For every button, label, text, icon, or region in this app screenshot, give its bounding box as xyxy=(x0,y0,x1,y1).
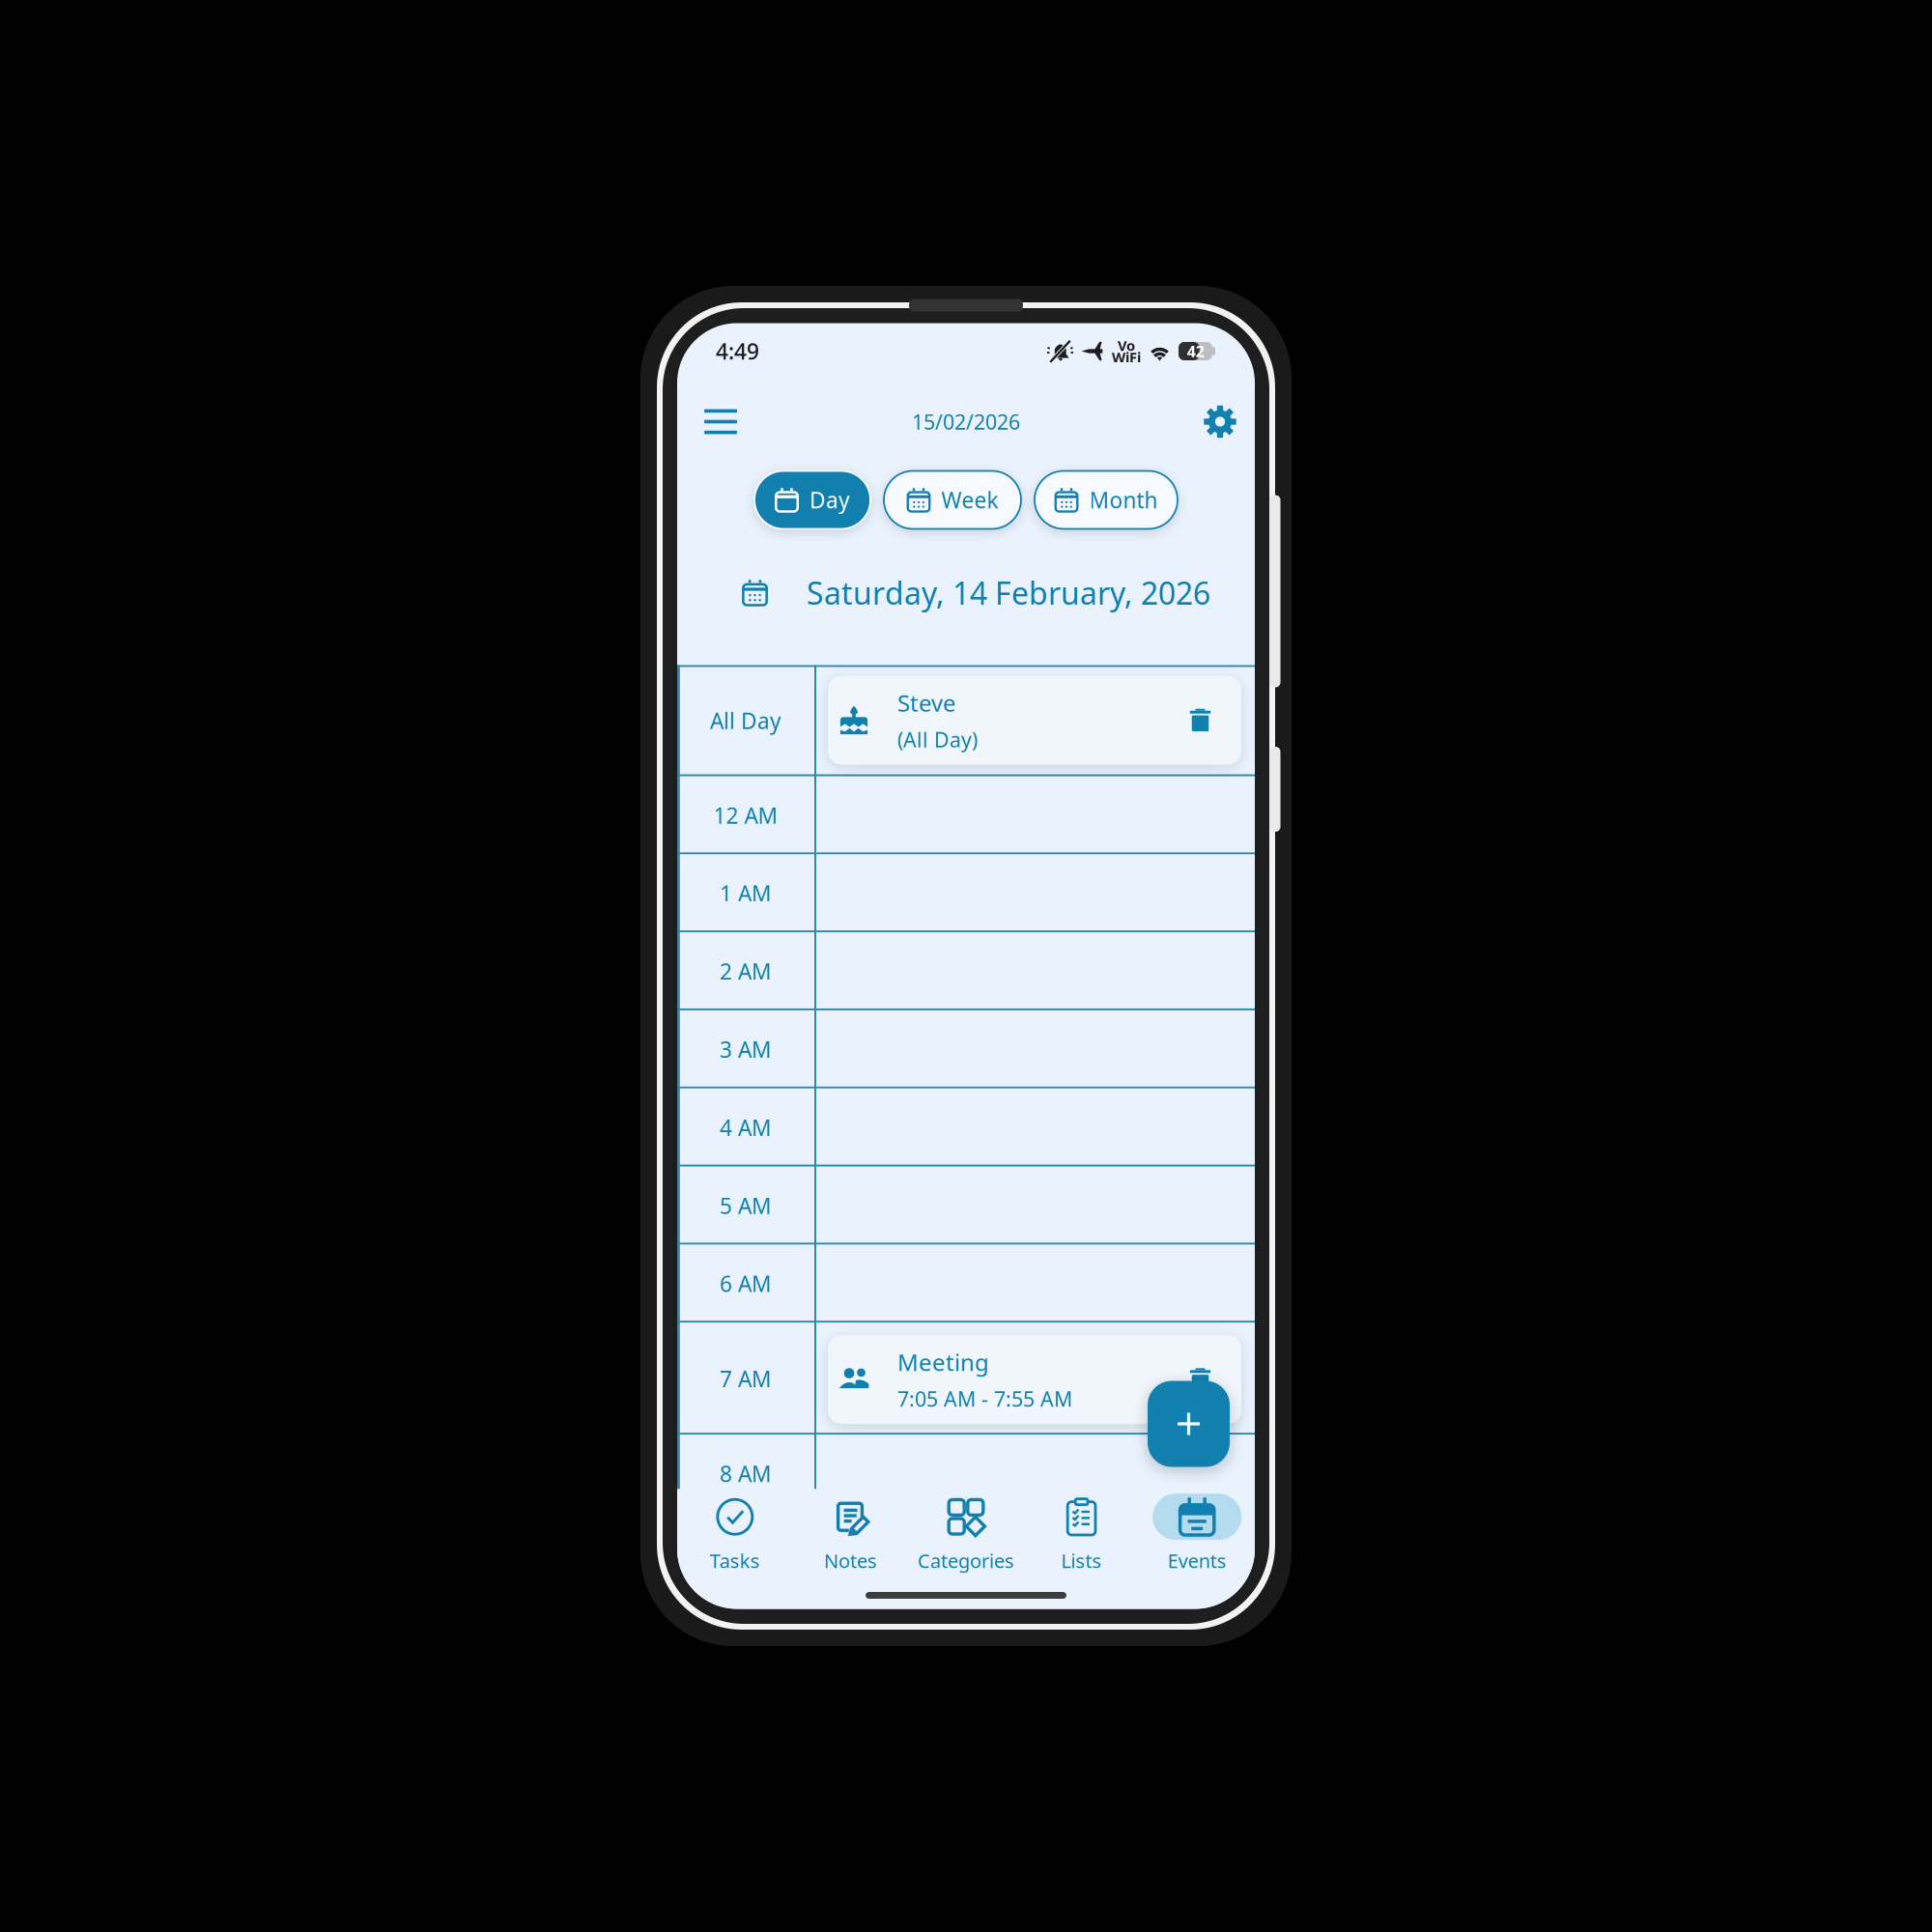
staticText: Tasks xyxy=(710,1548,760,1573)
staticText: Week xyxy=(941,485,998,514)
staticText: (All Day) xyxy=(897,726,978,753)
staticText: Day xyxy=(810,485,850,514)
staticText: Lists xyxy=(1061,1548,1102,1573)
staticText: 12 AM xyxy=(713,801,778,830)
button[interactable]: Steve xyxy=(828,676,1241,765)
staticText: 3 AM xyxy=(720,1035,772,1064)
staticText: Month xyxy=(1089,485,1158,514)
button[interactable]: Menu xyxy=(695,396,747,448)
button[interactable]: Tasks xyxy=(677,1489,793,1578)
staticText: Vo xyxy=(1118,336,1135,355)
staticText: 5 AM xyxy=(720,1191,772,1220)
button[interactable]: Settings xyxy=(1194,396,1246,448)
staticText: Saturday, 14 February, 2026 xyxy=(807,572,1210,613)
staticText: 8 AM xyxy=(720,1459,772,1488)
staticText: Events xyxy=(1168,1548,1227,1573)
button[interactable]: Week xyxy=(884,471,1021,529)
staticText: All Day xyxy=(710,706,781,735)
staticText: 15/02/2026 xyxy=(912,408,1020,435)
button[interactable]: Notes xyxy=(793,1489,908,1578)
button[interactable]: Categories xyxy=(908,1489,1024,1578)
button[interactable]: Month xyxy=(1035,471,1178,529)
staticText: 2 AM xyxy=(720,957,772,986)
staticText: Categories xyxy=(918,1548,1014,1573)
staticText: 4 AM xyxy=(720,1113,772,1142)
staticText: Steve xyxy=(897,687,956,718)
staticText: Notes xyxy=(824,1548,877,1573)
staticText: 6 AM xyxy=(720,1269,772,1298)
button[interactable]: Day xyxy=(754,471,870,529)
staticText: 7 AM xyxy=(720,1364,772,1393)
button[interactable]: Meeting xyxy=(828,1335,1241,1424)
staticText: 7:05 AM - 7:55 AM xyxy=(897,1385,1072,1412)
button[interactable]: Lists xyxy=(1024,1489,1139,1578)
staticText: Meeting xyxy=(897,1347,989,1377)
button[interactable]: Events xyxy=(1139,1489,1255,1578)
button[interactable]: Add event xyxy=(1148,1381,1230,1467)
staticText: 42 xyxy=(1187,341,1204,361)
staticText: 1 AM xyxy=(720,879,772,908)
staticText: WiFi xyxy=(1112,348,1141,366)
staticText: 4:49 xyxy=(716,337,759,366)
